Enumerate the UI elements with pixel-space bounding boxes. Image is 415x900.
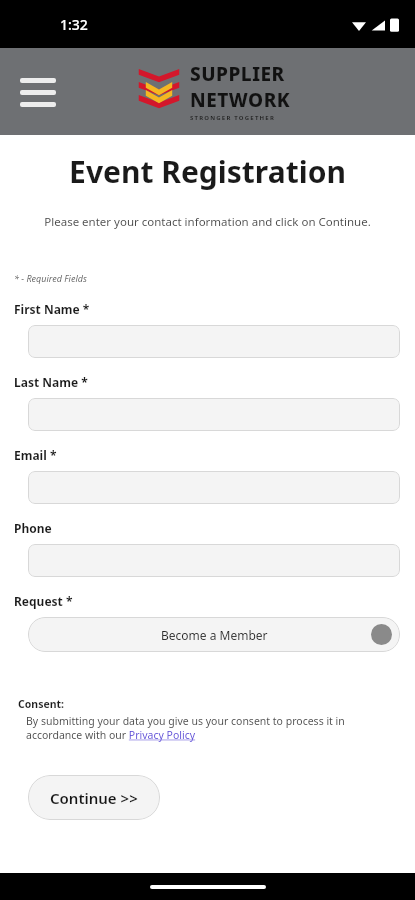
staticText: STRONGER TOGETHER	[190, 114, 276, 122]
staticText: Consent:	[18, 697, 65, 711]
staticText: Become a Member	[161, 627, 268, 643]
staticText: Email *	[14, 447, 57, 463]
staticText: * - Required Fields	[14, 272, 87, 284]
staticText: 1:32	[60, 15, 88, 34]
button[interactable]	[28, 471, 400, 504]
button[interactable]	[28, 544, 400, 577]
staticText: First Name *	[14, 301, 90, 317]
staticText: SUPPLIER	[190, 61, 285, 87]
button[interactable]: Become a Member	[28, 617, 400, 652]
staticText: Phone	[14, 520, 52, 536]
button[interactable]	[28, 398, 400, 431]
button[interactable]: Open navigation menu	[18, 72, 58, 112]
staticText: Event Registration	[0, 151, 415, 192]
button[interactable]: Continue >>	[28, 775, 160, 820]
button[interactable]	[28, 325, 400, 358]
staticText: By submitting your data you give us your…	[26, 714, 395, 742]
staticText: Continue >>	[50, 788, 138, 808]
staticText: Last Name *	[14, 374, 88, 390]
staticText: Please enter your contact information an…	[10, 214, 405, 230]
button[interactable]: SUPPLIER	[137, 61, 291, 122]
staticText: Request *	[14, 593, 73, 609]
staticText: NETWORK	[190, 87, 291, 113]
